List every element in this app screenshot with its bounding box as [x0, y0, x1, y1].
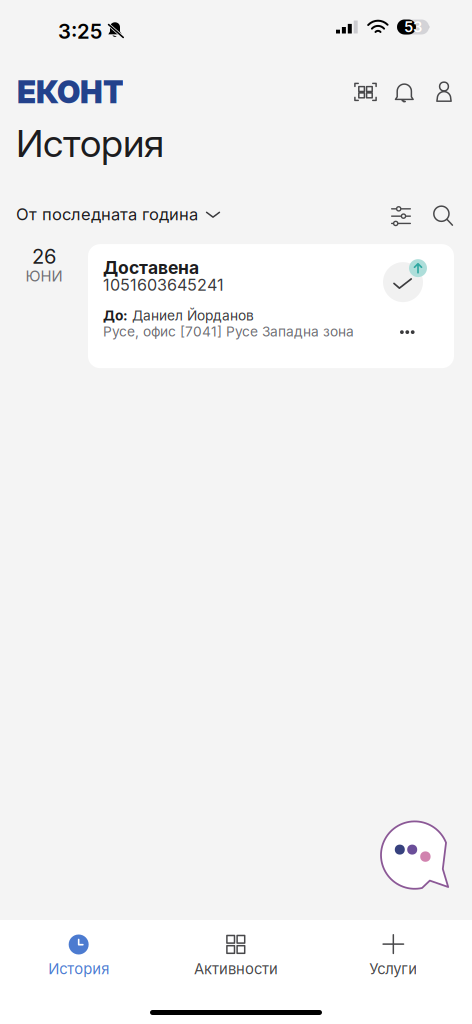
button[interactable]: Filter: [391, 203, 411, 226]
staticText: 26: [32, 244, 56, 268]
staticText: История: [48, 960, 109, 978]
staticText: 1051603645241: [103, 275, 224, 295]
button[interactable]: История: [0, 920, 157, 986]
staticText: Активности: [194, 960, 278, 978]
button[interactable]: Notifications: [394, 81, 415, 104]
staticText: Даниел Йорданов: [132, 307, 254, 324]
staticText: ЮНИ: [25, 267, 62, 285]
staticText: До:: [103, 307, 128, 324]
button[interactable]: Profile: [436, 81, 452, 102]
staticText: История: [16, 120, 164, 166]
button[interactable]: Search: [433, 202, 453, 226]
staticText: Услуги: [369, 960, 417, 978]
button[interactable]: Активности: [157, 920, 315, 986]
staticText: Доставена: [103, 257, 199, 278]
button[interactable]: От последната година: [16, 204, 221, 224]
staticText: От последната година: [16, 204, 198, 224]
button[interactable]: Услуги: [315, 920, 472, 986]
staticText: ЕКОНТ: [17, 73, 124, 110]
button[interactable]: Chat support: [381, 821, 451, 891]
staticText: 53: [404, 18, 422, 36]
button[interactable]: Доставена: [88, 244, 454, 368]
staticText: Русе, офис [7041] Русе Западна зона: [103, 323, 354, 340]
button[interactable]: Scan QR code: [354, 81, 377, 103]
staticText: 3:25: [58, 19, 102, 44]
